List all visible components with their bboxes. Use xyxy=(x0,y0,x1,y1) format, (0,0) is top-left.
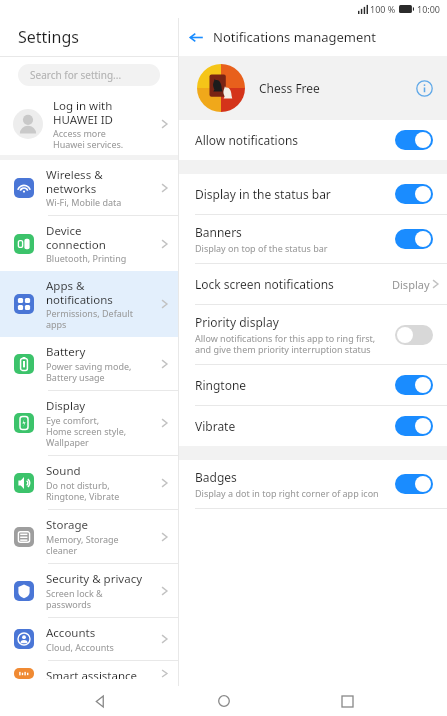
staticText: Access more Huawei services. xyxy=(53,127,124,150)
staticText: Lock screen notifications xyxy=(195,276,334,292)
button[interactable]: Back xyxy=(76,686,124,716)
button[interactable]: Chess Free xyxy=(179,56,447,120)
staticText: Smart assistance xyxy=(46,668,138,679)
button[interactable]: Sound xyxy=(0,456,178,509)
staticText: Sound xyxy=(46,463,81,479)
staticText: Display xyxy=(46,398,86,414)
staticText: Do not disturb, Ringtone, Vibrate xyxy=(46,479,120,502)
staticText: Eye comfort, Home screen style, Wallpape… xyxy=(46,414,127,448)
button[interactable]: Vibrate xyxy=(179,406,447,446)
button[interactable]: Banners xyxy=(179,215,447,263)
staticText: Memory, Storage cleaner xyxy=(46,533,119,556)
staticText: Chess Free xyxy=(259,80,320,96)
staticText: Notifications management xyxy=(213,28,377,46)
staticText: Banners xyxy=(195,224,242,240)
staticText: Storage xyxy=(46,517,88,533)
button[interactable]: App info xyxy=(407,71,441,105)
button[interactable]: Wireless & networks xyxy=(0,160,178,215)
staticText: Display on top of the status bar xyxy=(195,242,328,254)
staticText: 10:00 xyxy=(417,3,441,15)
staticText: Vibrate xyxy=(195,418,236,434)
staticText: Ringtone xyxy=(195,377,247,393)
button[interactable]: Storage xyxy=(0,510,178,563)
staticText: Battery xyxy=(46,344,86,360)
staticText: Wi-Fi, Mobile data xyxy=(46,196,122,208)
staticText: Display a dot in top right corner of app… xyxy=(195,487,379,499)
staticText: Device connection xyxy=(46,223,106,252)
button[interactable]: On xyxy=(395,229,433,249)
staticText: Display xyxy=(392,277,430,292)
button[interactable]: On xyxy=(395,474,433,494)
button[interactable]: On xyxy=(395,130,433,150)
staticText: Accounts xyxy=(46,625,96,641)
button[interactable]: Display in the status bar xyxy=(179,174,447,214)
button[interactable]: Search for setting... xyxy=(18,64,160,86)
staticText: Allow notifications xyxy=(195,132,299,148)
staticText: Cloud, Accounts xyxy=(46,641,114,653)
staticText: Screen lock & passwords xyxy=(46,587,103,610)
staticText: Log in with HUAWEI ID xyxy=(53,98,113,127)
button[interactable]: On xyxy=(395,184,433,204)
staticText: Wireless & networks xyxy=(46,167,103,196)
button[interactable]: Priority display xyxy=(179,305,447,364)
button[interactable]: Recent apps xyxy=(323,686,371,716)
button[interactable]: Home xyxy=(200,686,248,716)
button[interactable]: On xyxy=(395,375,433,395)
button[interactable]: Smart assistance xyxy=(0,661,178,686)
staticText: Display in the status bar xyxy=(195,186,331,202)
button[interactable]: Apps & notifications xyxy=(0,271,178,337)
button[interactable]: Allow notifications xyxy=(179,120,447,160)
staticText: Apps & notifications xyxy=(46,278,113,307)
button[interactable]: Off xyxy=(395,325,433,345)
staticText: Search for setting... xyxy=(30,68,122,82)
staticText: Priority display xyxy=(195,314,279,330)
button[interactable]: Security & privacy xyxy=(0,564,178,617)
staticText: Allow notifications for this app to ring… xyxy=(195,332,376,355)
button[interactable]: Battery xyxy=(0,337,178,390)
staticText: Badges xyxy=(195,469,237,485)
button[interactable]: Accounts xyxy=(0,618,178,660)
button[interactable]: Display xyxy=(0,391,178,455)
button[interactable]: Badges xyxy=(179,460,447,508)
button[interactable]: Device connection xyxy=(0,216,178,271)
staticText: Settings xyxy=(18,26,79,48)
button[interactable]: Lock screen notifications xyxy=(179,264,447,304)
staticText: Security & privacy xyxy=(46,571,143,587)
button[interactable]: Log in with HUAWEI ID xyxy=(0,93,178,155)
staticText: 100 % xyxy=(370,3,396,15)
button[interactable]: On xyxy=(395,416,433,436)
button[interactable]: Back xyxy=(179,20,213,54)
staticText: Permissions, Default apps xyxy=(46,307,133,330)
staticText: Power saving mode, Battery usage xyxy=(46,360,132,383)
button[interactable]: Ringtone xyxy=(179,365,447,405)
staticText: Bluetooth, Printing xyxy=(46,252,127,264)
